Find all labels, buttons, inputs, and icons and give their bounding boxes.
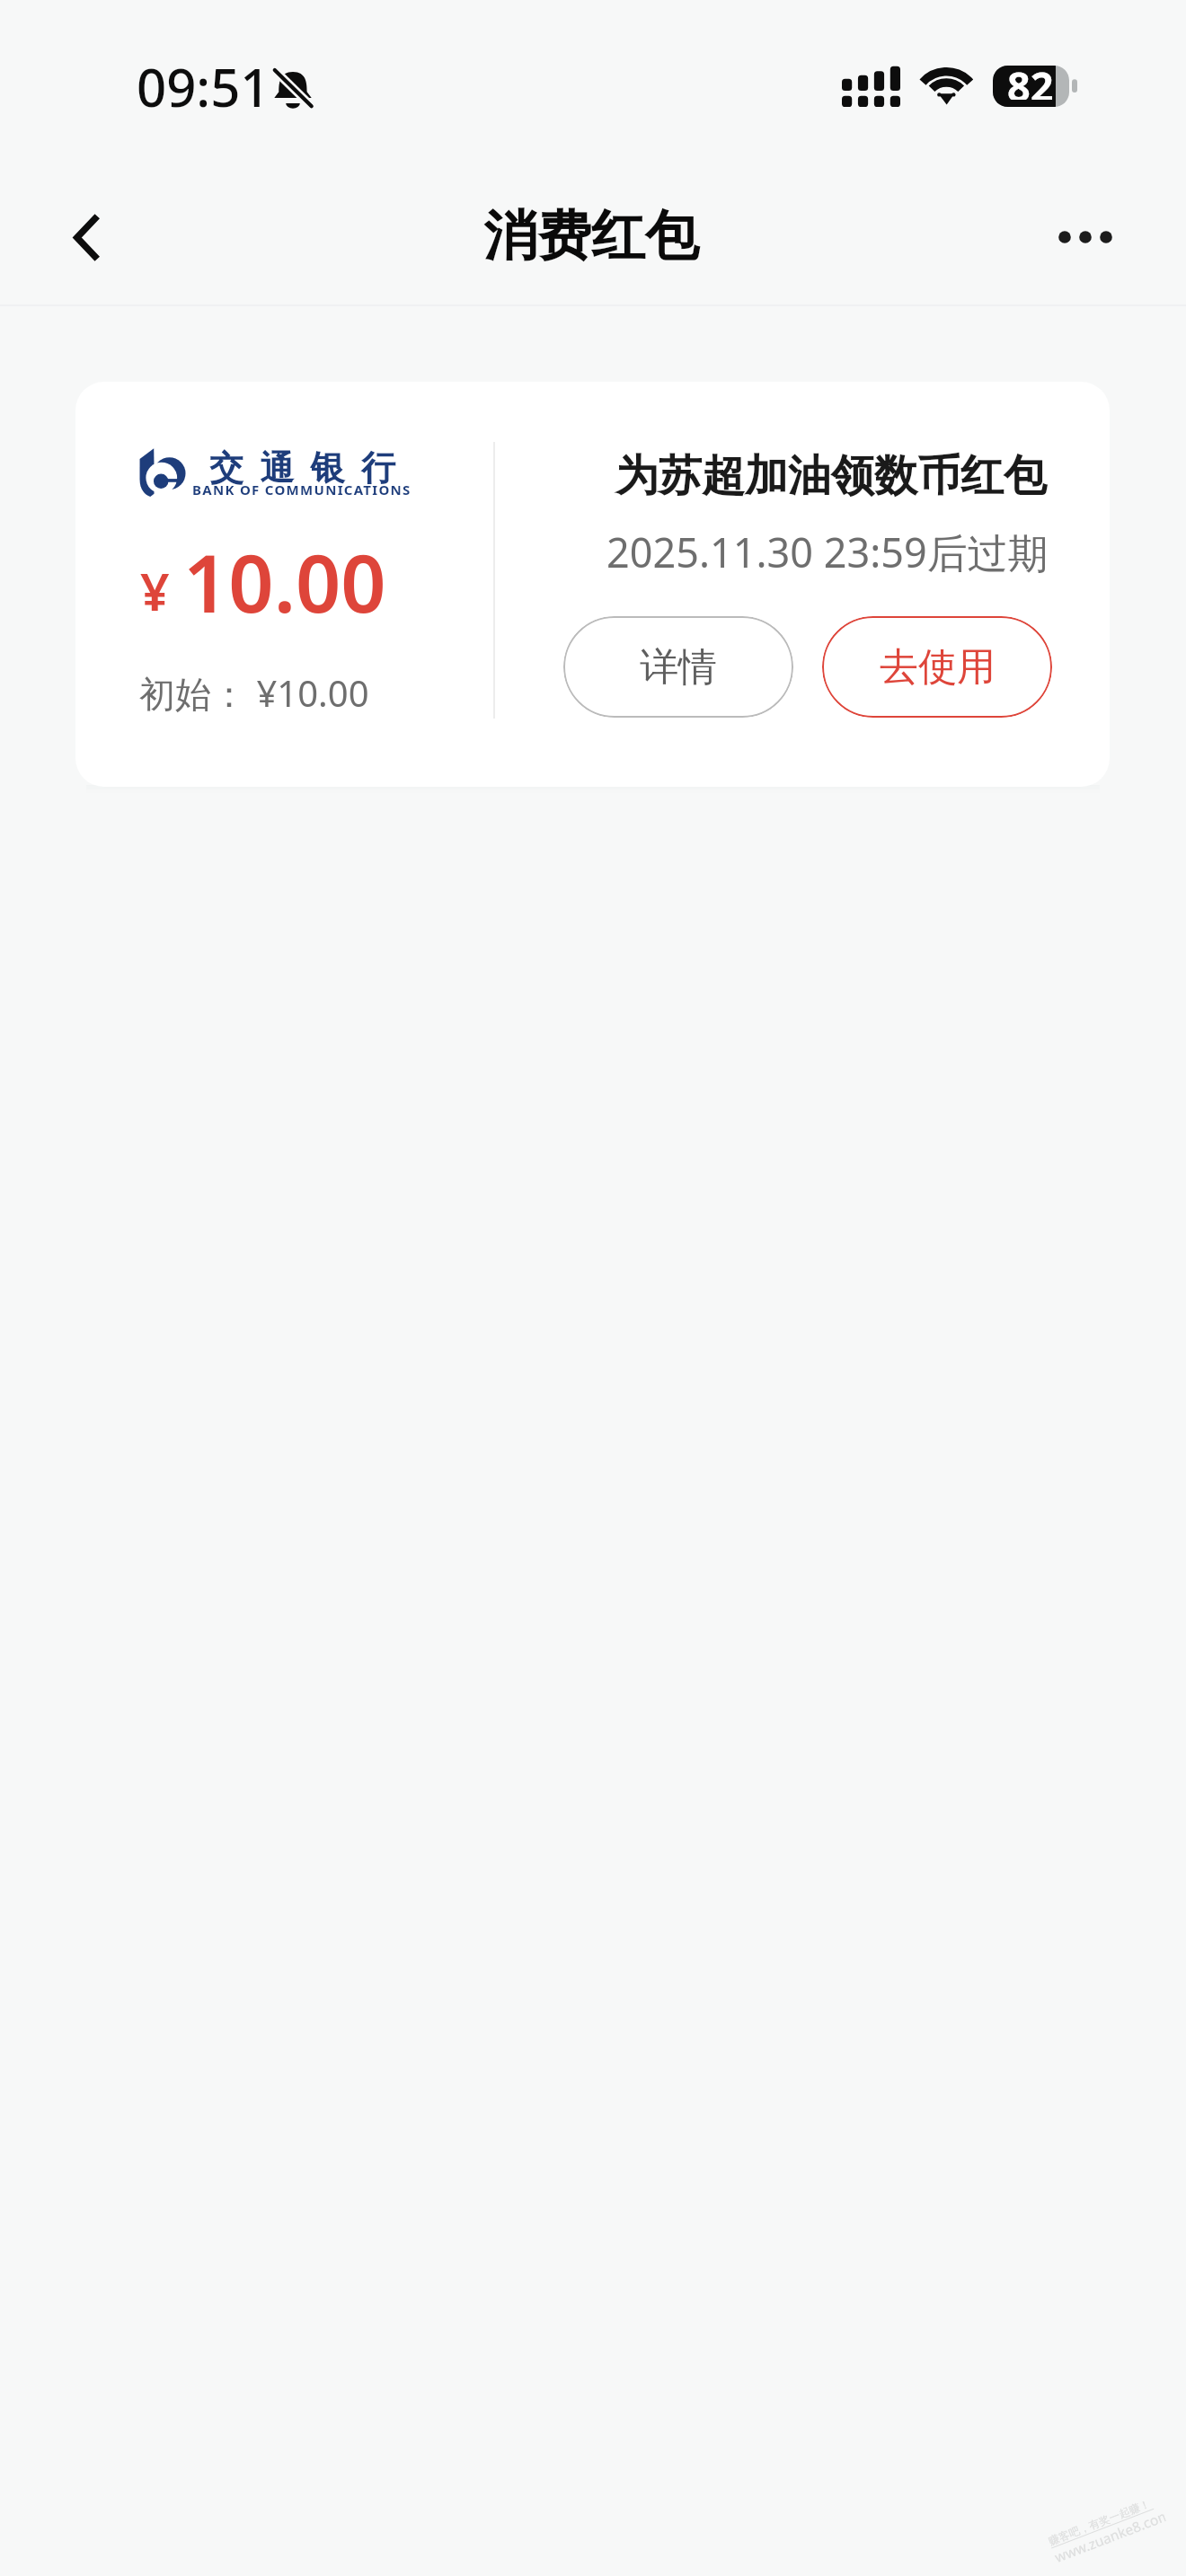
staticText: 初始： ¥10.00 <box>139 668 369 718</box>
staticText: 10.00 <box>183 528 386 636</box>
staticText: 交通银行 <box>209 446 412 490</box>
staticText: 详情 <box>640 643 717 692</box>
staticText: 09:51 <box>137 51 270 122</box>
staticText: ¥ <box>140 556 170 626</box>
button[interactable]: 交通银行 <box>75 382 1110 787</box>
button[interactable]: Back <box>47 202 126 272</box>
staticText: 消费红包 <box>0 202 1184 270</box>
staticText: 82 <box>1007 58 1054 100</box>
staticText: 赚客吧，有奖一起赚！ <box>1046 2497 1152 2548</box>
staticText: 为苏超加油领数币红包 <box>615 449 1047 503</box>
button[interactable]: 去使用 <box>822 616 1052 718</box>
button[interactable]: 详情 <box>563 616 793 718</box>
button[interactable]: More options <box>1040 203 1131 271</box>
staticText: BANK OF COMMUNICATIONS <box>192 481 412 498</box>
staticText: www.zuanke8.com <box>1052 2507 1167 2566</box>
staticText: 2025.11.30 23:59后过期 <box>606 525 1049 579</box>
staticText: 去使用 <box>880 643 996 692</box>
